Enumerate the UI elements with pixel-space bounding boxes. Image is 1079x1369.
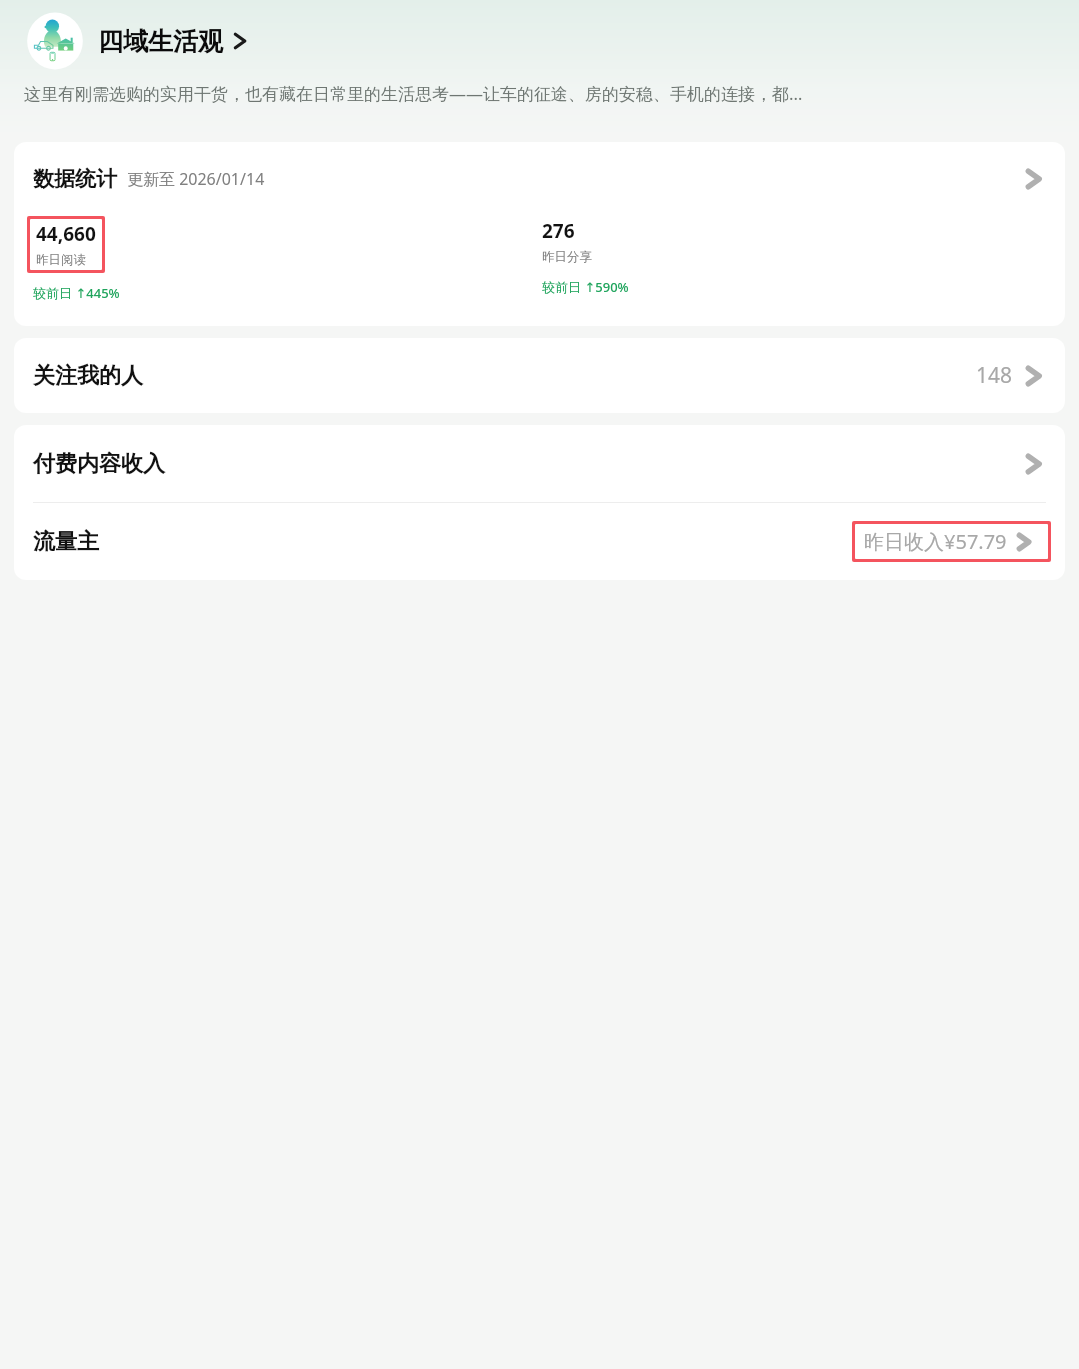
staticText: 昨日收入¥57.79 <box>864 528 1007 555</box>
staticText: 44,660 <box>36 221 96 247</box>
staticText: 276 <box>542 218 575 244</box>
button[interactable]: 数据统计 <box>14 142 1065 326</box>
staticText: 数据统计 <box>33 166 117 192</box>
other: 打开账号主页 <box>229 28 255 54</box>
staticText: 流量主 <box>33 528 99 556</box>
staticText: 付费内容收入 <box>33 450 165 478</box>
button[interactable]: 关注我的人 <box>14 338 1065 413</box>
staticText: 这里有刚需选购的实用干货，也有藏在日常里的生活思考——让车的征途、房的安稳、手机… <box>24 82 803 105</box>
button[interactable]: 流量主 <box>14 503 1065 580</box>
staticText: 148 <box>976 361 1013 390</box>
staticText: 较前日 ↑445% <box>33 284 120 302</box>
staticText: 昨日阅读 <box>36 252 86 268</box>
button[interactable]: 四域生活观 <box>26 12 1079 70</box>
staticText: 关注我的人 <box>33 362 143 390</box>
staticText: 较前日 ↑590% <box>542 278 629 296</box>
staticText: 昨日分享 <box>542 249 592 265</box>
staticText: 四域生活观 <box>98 26 223 57</box>
button[interactable]: 付费内容收入 <box>14 425 1065 502</box>
staticText: 更新至 2026/01/14 <box>127 168 265 190</box>
other: 查看付费内容收入 <box>1021 449 1051 479</box>
other: 查看数据统计 <box>1021 164 1051 194</box>
